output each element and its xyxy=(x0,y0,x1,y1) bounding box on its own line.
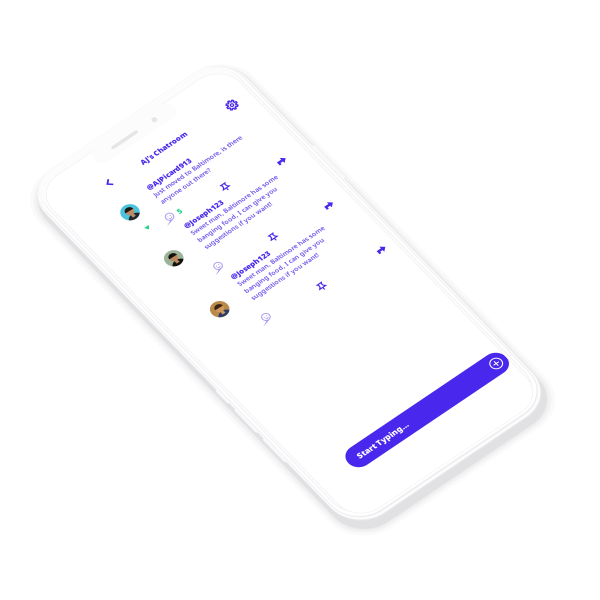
staticText: Just moved to Baltimore, is there xyxy=(148,127,316,141)
staticText: banging food, I can give you xyxy=(145,348,296,362)
staticText: @AJPicard913 xyxy=(148,110,231,126)
button[interactable]: Pin message xyxy=(232,412,249,429)
button[interactable]: Pin message xyxy=(232,181,249,198)
staticText: 5 xyxy=(156,172,163,188)
staticText: Sweet man, Baltimore has some xyxy=(145,332,310,346)
button[interactable]: Forward message xyxy=(327,198,345,213)
staticText: suggestions if you want! xyxy=(145,364,273,378)
staticText: AJ's Chatroom xyxy=(169,68,256,84)
staticText: @Joseph123 xyxy=(145,315,218,331)
staticText: suggestions if you want! xyxy=(148,248,276,262)
staticText: Sweet man, Baltimore has some xyxy=(148,216,313,230)
staticText: banging food, I can give you xyxy=(148,232,299,246)
staticText: @Joseph123 xyxy=(148,199,221,215)
staticText: anyone out there? xyxy=(148,143,243,157)
button[interactable]: React to message xyxy=(132,171,163,189)
